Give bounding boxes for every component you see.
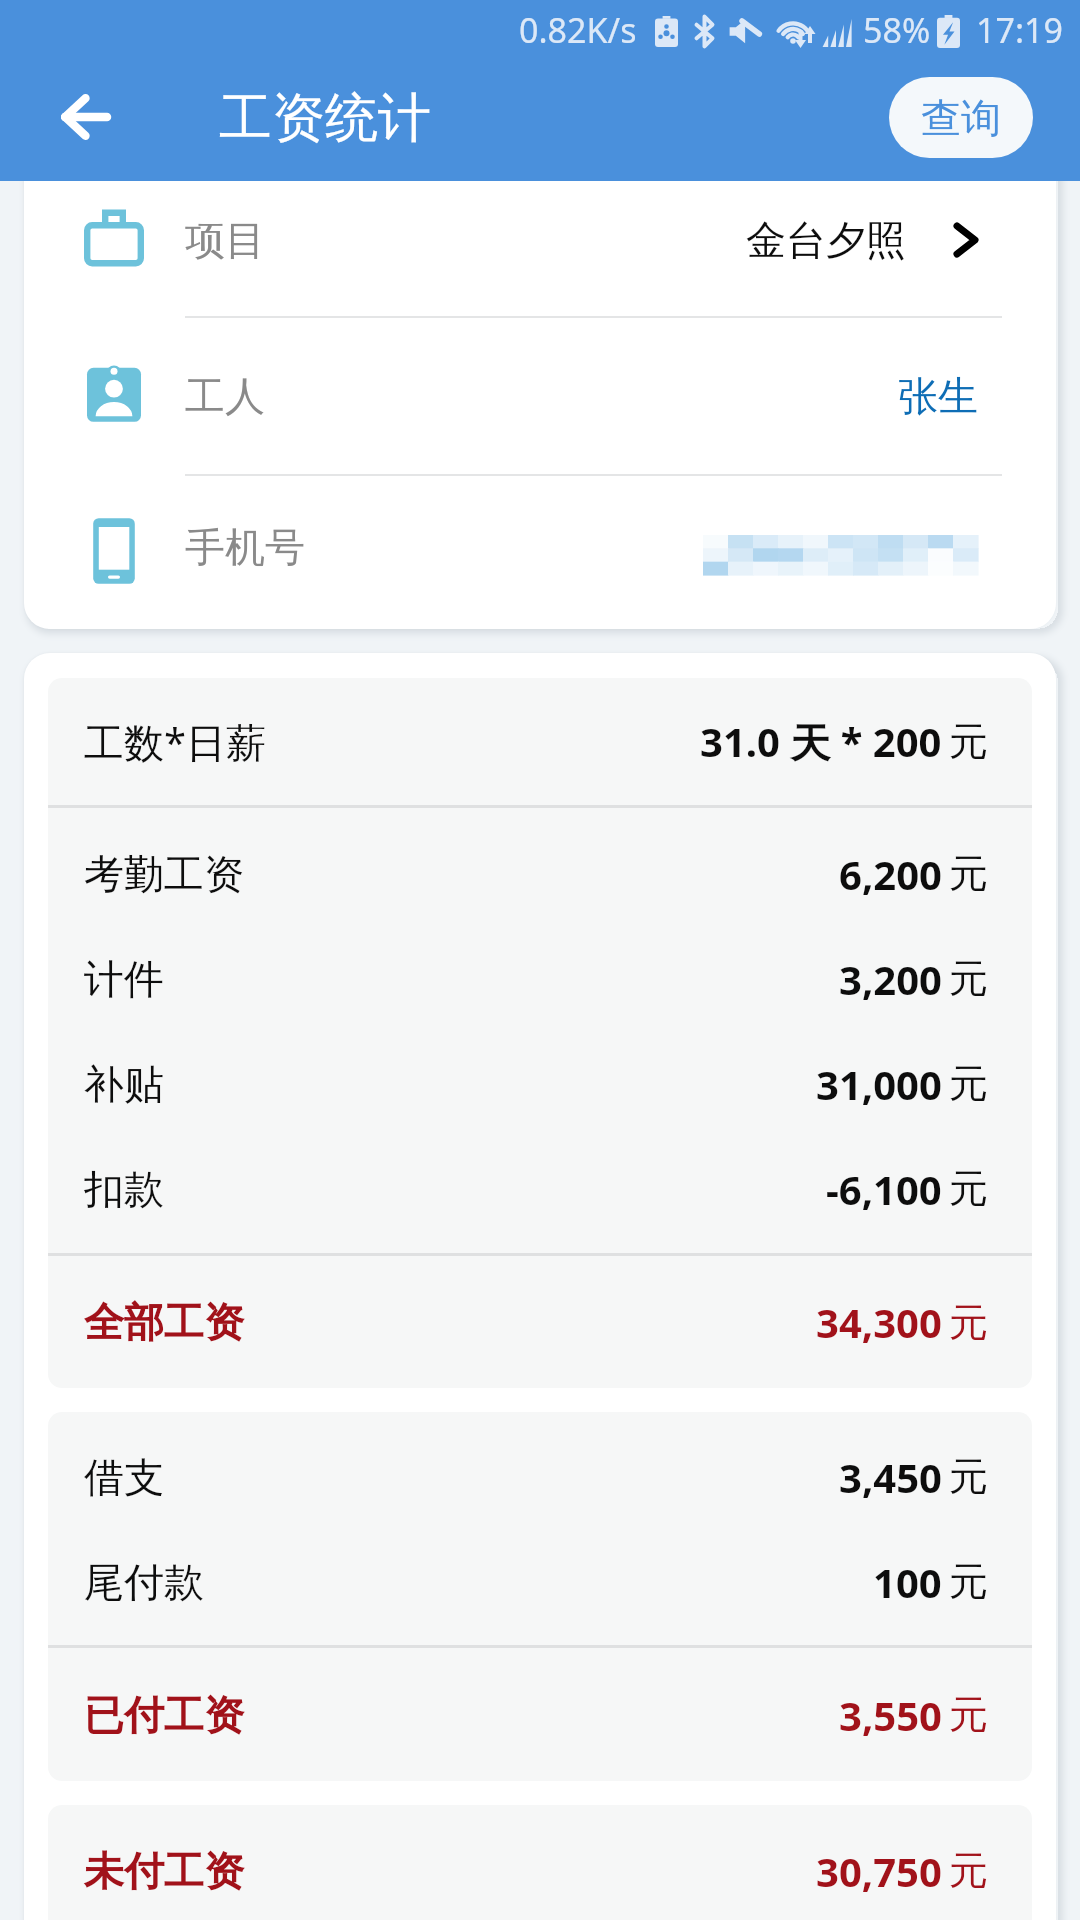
staticText: 项目 (185, 215, 265, 265)
staticText: 34,300 (816, 1295, 942, 1349)
button[interactable]: Back (37, 70, 131, 164)
button[interactable]: 全部工资 (48, 1256, 1032, 1388)
staticText: 考勤工资 (84, 849, 244, 899)
staticText: 31.0 天 * 200 (700, 714, 942, 769)
staticText: 元 (949, 849, 988, 898)
staticText: 元 (949, 1164, 988, 1213)
staticText: 元 (949, 1557, 988, 1606)
staticText: 未付工资 (84, 1846, 244, 1896)
staticText: 全部工资 (84, 1297, 244, 1347)
staticText: 张生 (898, 371, 978, 421)
staticText: 0.82K/s (519, 7, 637, 53)
staticText: 3,550 (839, 1688, 942, 1742)
button[interactable]: 考勤工资 (48, 821, 1032, 926)
staticText: 元 (949, 1846, 988, 1895)
staticText: 借支 (84, 1452, 164, 1502)
staticText: 手机号 (185, 522, 305, 572)
button[interactable]: 尾付款 (48, 1529, 1032, 1634)
staticText: 元 (949, 1059, 988, 1108)
staticText: 元 (949, 1298, 988, 1347)
button[interactable]: 查询 (889, 77, 1033, 158)
staticText: 17:19 (976, 7, 1063, 53)
staticText: 3,200 (839, 952, 942, 1006)
button[interactable]: 手机号 (24, 476, 1056, 617)
staticText: 工人 (185, 371, 265, 421)
button[interactable]: 工数*日薪 (48, 678, 1032, 805)
staticText: 工资统计 (219, 85, 431, 152)
staticText: 尾付款 (84, 1557, 204, 1607)
button[interactable]: 工人 (24, 318, 1056, 474)
staticText: 6,200 (839, 847, 942, 901)
button[interactable]: 未付工资 (48, 1805, 1032, 1920)
button[interactable]: 扣款 (48, 1136, 1032, 1241)
staticText: 58% (863, 7, 931, 53)
staticText: 补贴 (84, 1059, 164, 1109)
button[interactable]: 借支 (48, 1424, 1032, 1529)
staticText: 30,750 (816, 1844, 942, 1898)
staticText: 元 (949, 954, 988, 1003)
staticText: 100 (873, 1555, 942, 1609)
button[interactable]: 补贴 (48, 1031, 1032, 1136)
button[interactable]: 已付工资 (48, 1648, 1032, 1781)
staticText: 31,000 (816, 1057, 942, 1111)
staticText: 元 (949, 1690, 988, 1739)
button[interactable]: 计件 (48, 926, 1032, 1031)
staticText: -6,100 (826, 1162, 942, 1216)
staticText: 查询 (921, 93, 1001, 143)
button[interactable]: 项目 (24, 163, 1056, 316)
staticText: 3,450 (839, 1450, 942, 1504)
staticText: 元 (949, 1452, 988, 1501)
staticText: 工数*日薪 (84, 714, 267, 769)
staticText: 扣款 (84, 1164, 164, 1214)
staticText: 元 (949, 717, 988, 766)
staticText: 金台夕照 (746, 215, 906, 265)
staticText: 已付工资 (84, 1690, 244, 1740)
staticText: 计件 (84, 954, 164, 1004)
